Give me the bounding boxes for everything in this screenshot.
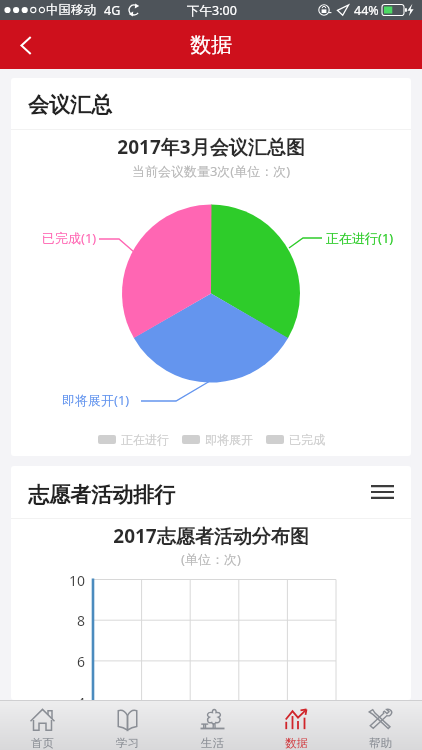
staticText: 下午3:00 — [187, 2, 237, 19]
staticText: 4G — [104, 2, 121, 19]
staticText: 数据 — [190, 32, 232, 58]
button[interactable]: Menu — [366, 476, 398, 508]
staticText: 即将展开 — [205, 432, 253, 447]
staticText: 4 — [76, 693, 85, 700]
staticText: 生活 — [201, 736, 224, 750]
staticText: 10 — [68, 571, 85, 590]
staticText: 8 — [76, 611, 85, 630]
staticText: 已完成(1) — [42, 229, 97, 247]
button[interactable]: 生活 — [170, 701, 254, 750]
button[interactable]: 已完成 — [266, 429, 325, 450]
button[interactable]: Back — [4, 23, 48, 67]
staticText: 44% — [354, 2, 379, 19]
button[interactable]: 即将展开 — [182, 429, 253, 450]
staticText: 数据 — [285, 736, 308, 750]
button[interactable]: 首页 — [0, 701, 85, 750]
staticText: 学习 — [116, 736, 139, 750]
staticText: 首页 — [31, 736, 54, 750]
staticText: 正在进行 — [121, 432, 169, 447]
staticText: 中国移动 — [46, 2, 96, 18]
button[interactable]: 正在进行 — [98, 429, 169, 450]
staticText: 正在进行(1) — [326, 229, 394, 247]
staticText: 当前会议数量3次(单位：次) — [11, 162, 411, 180]
staticText: 帮助 — [369, 736, 392, 750]
button[interactable]: 帮助 — [338, 701, 422, 750]
staticText: (单位：次) — [11, 550, 411, 568]
staticText: 2017志愿者活动分布图 — [11, 523, 411, 549]
button[interactable]: 数据 — [254, 701, 338, 750]
staticText: 已完成 — [289, 432, 325, 447]
staticText: 志愿者活动排行 — [28, 482, 175, 508]
staticText: 2017年3月会议汇总图 — [11, 134, 411, 160]
staticText: 会议汇总 — [28, 92, 112, 118]
staticText: 即将展开(1) — [62, 391, 130, 409]
staticText: 6 — [76, 652, 85, 671]
button[interactable]: 学习 — [85, 701, 170, 750]
